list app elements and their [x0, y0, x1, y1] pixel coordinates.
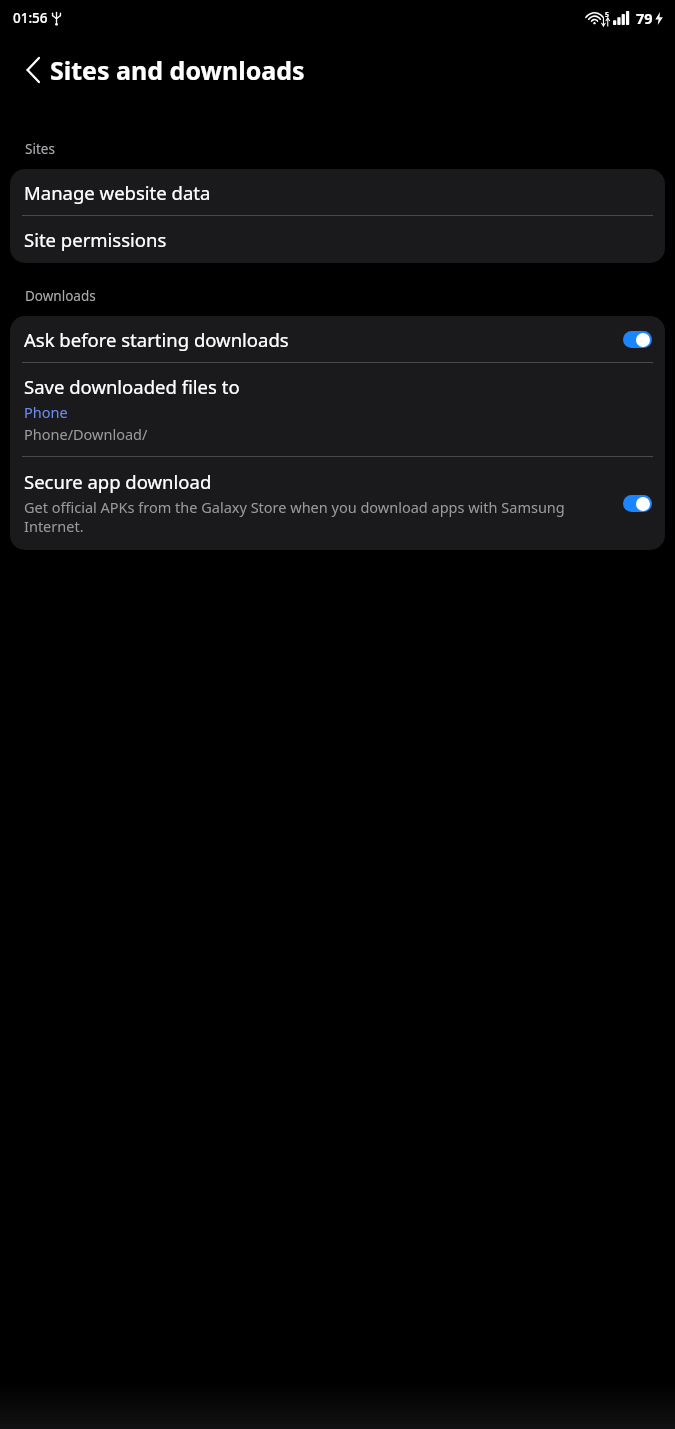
button[interactable]: Ask before starting downloads: [10, 316, 665, 362]
staticText: Manage website data: [24, 180, 211, 205]
staticText: 01:56: [13, 9, 48, 27]
staticText: Sites and downloads: [50, 53, 305, 87]
staticText: Ask before starting downloads: [24, 327, 623, 352]
staticText: Save downloaded files to: [24, 374, 240, 399]
button[interactable]: Site permissions: [10, 216, 665, 263]
button[interactable]: Secure app download: [10, 457, 665, 550]
staticText: Sites: [25, 140, 55, 158]
staticText: Phone: [24, 402, 68, 422]
staticText: Site permissions: [24, 227, 167, 252]
staticText: 5: [605, 10, 610, 20]
button[interactable]: Toggle: [623, 331, 652, 348]
button[interactable]: Manage website data: [10, 169, 665, 215]
button[interactable]: Save downloaded files to: [10, 363, 665, 456]
staticText: Downloads: [25, 287, 96, 305]
staticText: Secure app download: [24, 469, 212, 494]
button[interactable]: Back: [9, 46, 57, 94]
staticText: Phone/Download/: [24, 424, 148, 444]
button[interactable]: Toggle: [623, 495, 652, 512]
staticText: Get official APKs from the Galaxy Store …: [24, 497, 617, 536]
staticText: 79: [636, 8, 653, 28]
